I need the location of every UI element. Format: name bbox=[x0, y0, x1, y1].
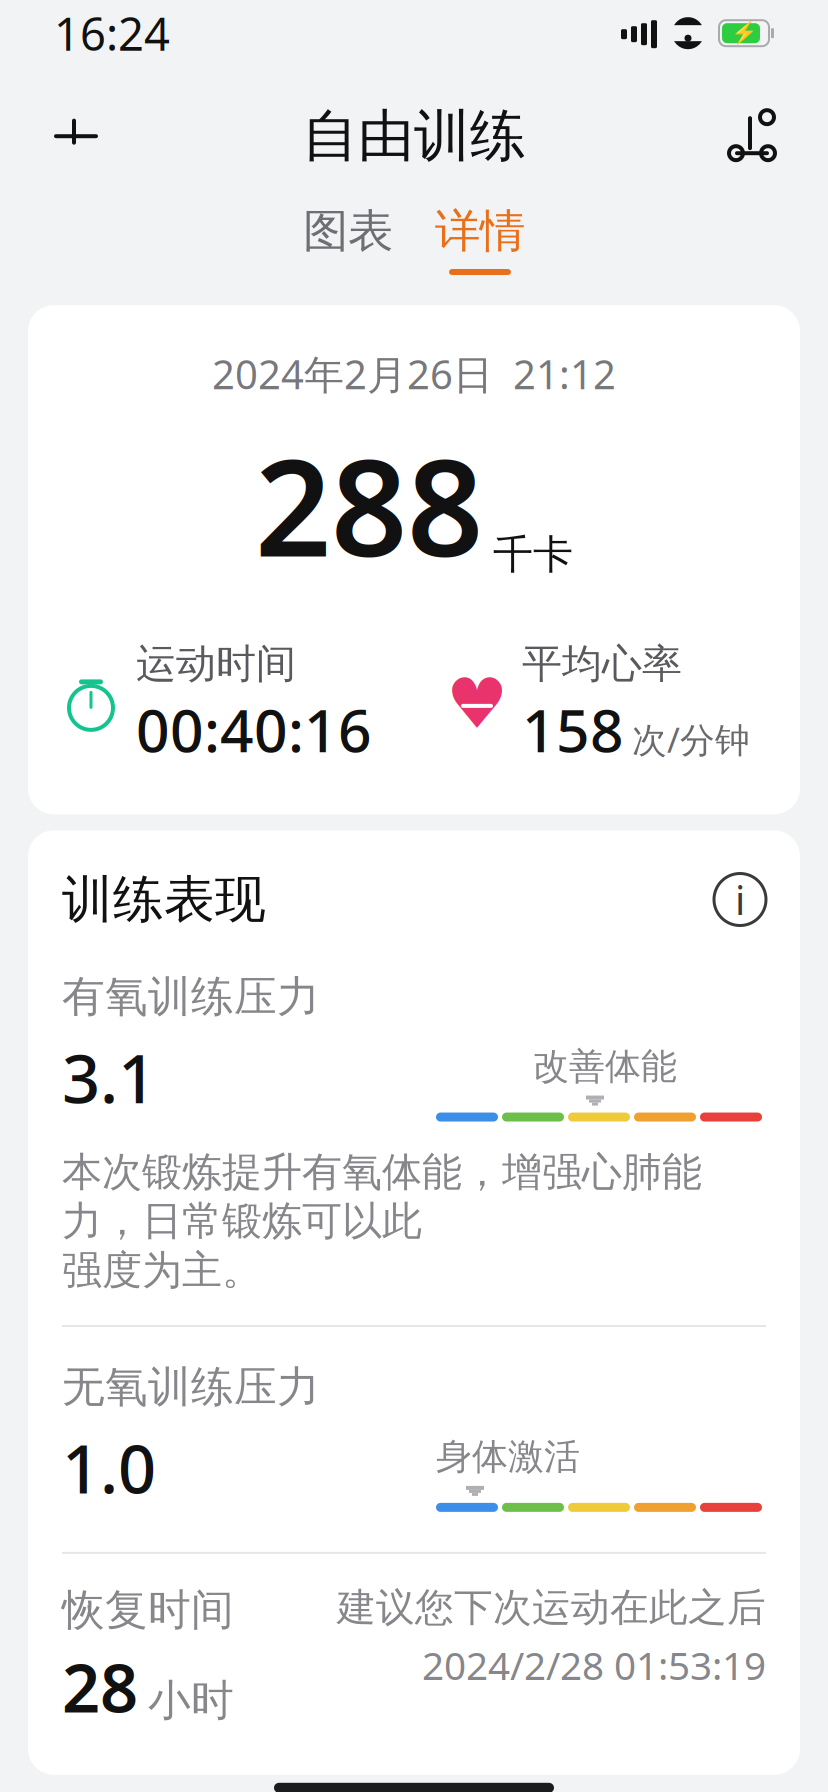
button[interactable]: 详情 bbox=[435, 203, 525, 275]
staticText: 恢复时间 bbox=[62, 1584, 234, 1636]
staticText: 运动时间 bbox=[136, 639, 296, 688]
staticText: i bbox=[735, 873, 745, 926]
staticText: 训练表现 bbox=[62, 868, 266, 931]
staticText: 建议您下次运动在此之后 bbox=[337, 1584, 766, 1631]
staticText: 28 bbox=[62, 1642, 138, 1731]
staticText: 有氧训练压力 bbox=[62, 971, 320, 1023]
button[interactable]: 分享 bbox=[712, 96, 792, 176]
staticText: ♥ bbox=[446, 664, 508, 743]
staticText: 详情 bbox=[435, 203, 525, 259]
staticText: 2024年2月26日 21:12 bbox=[212, 347, 616, 400]
staticText: 小时 bbox=[148, 1674, 234, 1727]
staticText: 00:40:16 bbox=[136, 690, 372, 768]
staticText: 1.0 bbox=[62, 1423, 156, 1512]
staticText: 图表 bbox=[303, 203, 393, 259]
button[interactable]: 图表 bbox=[303, 203, 393, 275]
staticText: 288 bbox=[255, 416, 483, 593]
staticText: 无氧训练压力 bbox=[62, 1361, 320, 1413]
button[interactable]: 说明 bbox=[714, 873, 766, 925]
staticText: 158 bbox=[522, 690, 624, 768]
staticText: 改善体能 bbox=[533, 1044, 677, 1088]
button[interactable]: 返回 bbox=[36, 96, 116, 176]
staticText: 身体激活 bbox=[436, 1435, 580, 1479]
staticText: ⚡ bbox=[730, 21, 757, 45]
staticText: 3.1 bbox=[62, 1033, 156, 1121]
staticText: 千卡 bbox=[493, 530, 573, 579]
staticText: 自由训练 bbox=[302, 102, 526, 171]
staticText: 16:24 bbox=[54, 3, 170, 63]
staticText: 次/分钟 bbox=[632, 716, 750, 762]
staticText: 平均心率 bbox=[522, 639, 682, 688]
staticText: 2024/2/28 01:53:19 bbox=[422, 1639, 766, 1691]
staticText: 本次锻炼提升有氧体能，增强心肺能力，日常锻炼可以此 强度为主。 bbox=[62, 1148, 702, 1295]
